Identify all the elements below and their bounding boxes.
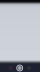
button[interactable]: Photo library [9, 66, 12, 70]
button[interactable]: Take photo [17, 65, 23, 71]
button[interactable]: Switch camera [27, 66, 31, 70]
